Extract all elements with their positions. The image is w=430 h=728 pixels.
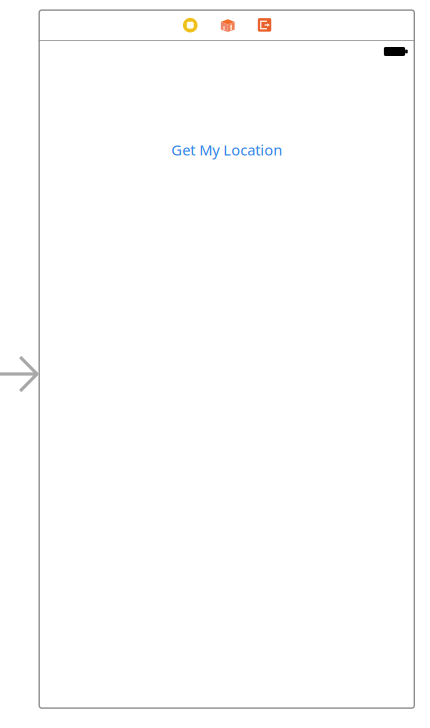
staticText: Get My Location	[171, 140, 282, 159]
button[interactable]: First Responder	[218, 15, 238, 35]
button[interactable]: View Controller	[180, 15, 200, 35]
button[interactable]: Exit	[255, 15, 275, 35]
button[interactable]: Get My Location	[171, 140, 282, 159]
